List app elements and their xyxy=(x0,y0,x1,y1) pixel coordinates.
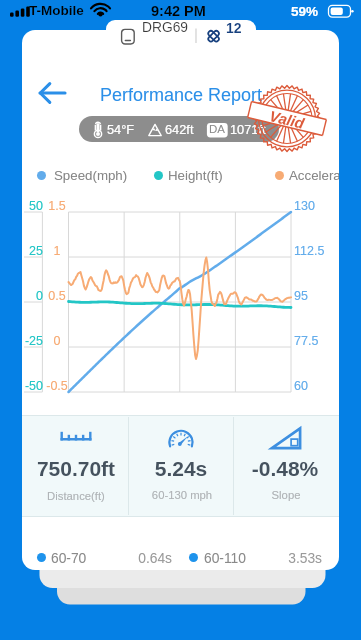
button[interactable] xyxy=(128,415,234,517)
staticText: 750.70ft xyxy=(22,457,151,480)
staticText: DA xyxy=(197,123,237,136)
staticText: 5.24s xyxy=(106,457,256,480)
staticText: 60-70 xyxy=(51,551,311,566)
staticText: 60-130 mph xyxy=(107,489,257,502)
staticText: Acceleration(g) xyxy=(289,168,339,183)
button[interactable] xyxy=(234,415,339,517)
staticText: 9:42 PM xyxy=(151,3,361,19)
staticText: 12 xyxy=(226,20,256,36)
staticText: 642ft xyxy=(165,122,279,136)
staticText: Slope xyxy=(211,489,339,502)
staticText: 59% xyxy=(291,4,361,19)
staticText: 25 xyxy=(22,244,43,258)
staticText: 0 xyxy=(22,289,43,303)
staticText: 1 xyxy=(37,244,77,258)
button[interactable]: DRG69 xyxy=(106,20,256,51)
staticText: 0.5 xyxy=(37,289,77,303)
button[interactable] xyxy=(22,415,128,517)
staticText: Distance(ft) xyxy=(22,490,151,503)
staticText: 1071ft xyxy=(230,122,279,136)
staticText: -0.48% xyxy=(210,457,339,480)
staticText: DRG69 xyxy=(142,20,256,35)
staticText: 60 xyxy=(294,379,339,393)
staticText: 60-110 xyxy=(204,551,339,566)
staticText: Height(ft) xyxy=(168,168,339,183)
staticText: 1.5 xyxy=(37,199,77,213)
staticText: -25 xyxy=(22,334,43,348)
staticText: 95 xyxy=(294,289,339,303)
staticText: Speed(mph) xyxy=(54,168,314,183)
staticText: 50 xyxy=(22,199,43,213)
button[interactable]: Back xyxy=(38,80,67,106)
staticText: Performance Report xyxy=(41,85,321,105)
staticText: -0.5 xyxy=(37,379,77,393)
staticText: 54°F xyxy=(107,122,279,136)
staticText: 112.5 xyxy=(294,244,339,258)
button[interactable] xyxy=(22,540,180,570)
staticText: 130 xyxy=(294,199,339,213)
staticText: Valid xyxy=(267,107,306,132)
button[interactable]: 54°F xyxy=(79,116,279,142)
staticText: 0 xyxy=(37,334,77,348)
staticText: T-Mobile xyxy=(29,3,289,18)
button[interactable] xyxy=(180,540,339,570)
staticText: 0.64s xyxy=(102,551,172,566)
staticText: -50 xyxy=(22,379,43,393)
staticText: 77.5 xyxy=(294,334,339,348)
staticText: 3.53s xyxy=(252,551,322,566)
